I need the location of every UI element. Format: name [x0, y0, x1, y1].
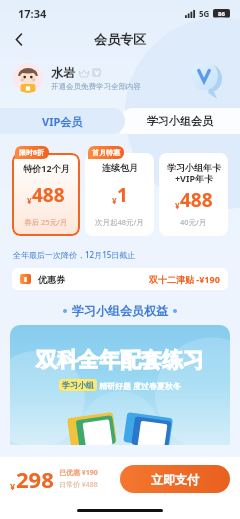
staticText: 日常价 ¥488: [59, 480, 98, 490]
staticText: 学习小组: [62, 380, 94, 390]
staticText: 学习小组会员: [147, 114, 213, 128]
button[interactable]: 特价12个月: [12, 153, 80, 236]
staticText: 488: [180, 187, 213, 213]
staticText: VIP会员: [42, 114, 83, 129]
staticText: 86: [218, 10, 225, 18]
staticText: 首月特惠: [92, 148, 120, 157]
staticText: 已优惠 ¥190: [59, 468, 98, 478]
button[interactable]: VIP会员: [0, 108, 125, 134]
button[interactable]: Back: [8, 28, 30, 50]
staticText: 精研好题 度过春夏秋冬: [99, 380, 182, 391]
staticText: 17:34: [18, 6, 47, 21]
staticText: 298: [16, 464, 54, 494]
button[interactable]: 双科全年配套练习: [10, 325, 230, 445]
staticText: ¥: [10, 480, 16, 492]
staticText: 学习小组年卡 +VIP年卡: [167, 162, 221, 184]
button[interactable]: 连续包月: [85, 153, 154, 236]
staticText: V: [95, 69, 99, 77]
button[interactable]: 学习小组年卡 +VIP年卡: [159, 153, 228, 236]
staticText: ¥: [27, 195, 32, 206]
button[interactable]: 优惠券: [12, 268, 228, 290]
staticText: ¥: [175, 200, 180, 211]
staticText: 1: [117, 182, 128, 208]
staticText: ¥: [112, 195, 117, 206]
staticText: 40元/月: [180, 217, 207, 227]
staticText: 双十二津贴 -¥190: [149, 273, 220, 285]
staticText: 全年最后一次降价，12月15日截止: [13, 249, 136, 260]
staticText: 限时6折: [19, 148, 45, 158]
staticText: 开通会员免费学习全部内容: [51, 82, 141, 91]
staticText: 优惠券: [38, 274, 65, 285]
staticText: 488: [32, 182, 65, 208]
staticText: 立即支付: [151, 472, 199, 487]
staticText: 连续包月: [102, 162, 138, 173]
staticText: 学习小组会员权益: [72, 303, 168, 318]
staticText: 水岩: [51, 65, 75, 80]
staticText: 会员专区: [94, 31, 146, 47]
button[interactable]: 学习小组会员: [120, 108, 240, 134]
staticText: 双科全年配套练习: [36, 347, 204, 373]
staticText: 特价12个月: [23, 162, 70, 174]
button[interactable]: 立即支付: [120, 465, 230, 493]
staticText: 券后 25元/月: [24, 217, 68, 227]
staticText: 次月起48元/月: [95, 217, 144, 227]
staticText: 5G: [199, 8, 210, 19]
